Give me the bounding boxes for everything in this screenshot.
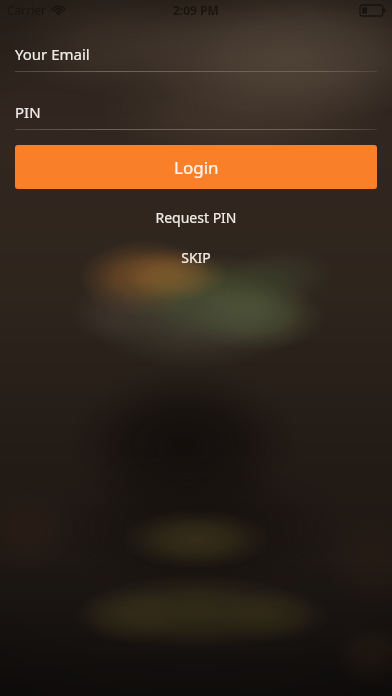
staticText: Request PIN: [155, 208, 237, 227]
button[interactable]: Request PIN: [0, 202, 392, 233]
button[interactable]: PIN: [0, 102, 392, 130]
staticText: SKIP: [181, 248, 211, 267]
button[interactable]: Your Email: [0, 44, 392, 72]
staticText: Login: [174, 156, 219, 179]
staticText: PIN: [15, 102, 41, 122]
staticText: 2:09 PM: [173, 2, 219, 18]
button[interactable]: SKIP: [0, 242, 392, 273]
staticText: Carrier: [7, 2, 47, 18]
staticText: Your Email: [15, 44, 90, 64]
button[interactable]: Login: [15, 145, 377, 189]
